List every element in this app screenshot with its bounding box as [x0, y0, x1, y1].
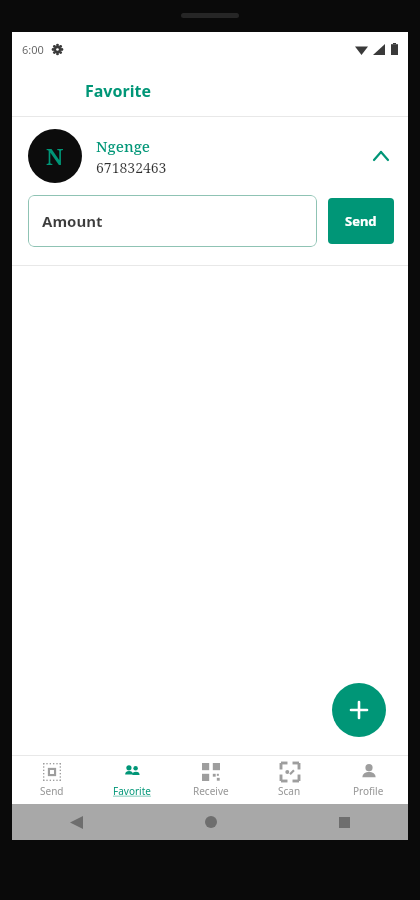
button[interactable]: Scan	[250, 756, 329, 804]
staticText: Send	[345, 212, 377, 230]
staticText: 671832463	[96, 158, 167, 177]
other: Back	[70, 816, 83, 829]
staticText: N	[46, 141, 64, 171]
staticText: Ngenge	[96, 136, 150, 156]
staticText: Favorite	[85, 80, 151, 102]
button[interactable]: Amount	[28, 195, 317, 247]
button[interactable]: Add	[332, 683, 386, 737]
staticText: Send	[40, 784, 64, 798]
button[interactable]: Send	[12, 756, 92, 804]
button[interactable]: Receive	[171, 756, 250, 804]
button[interactable]: N	[12, 117, 408, 183]
staticText: Profile	[353, 784, 384, 798]
button[interactable]: Send	[328, 198, 394, 244]
staticText: Scan	[278, 784, 301, 798]
button[interactable]: Collapse	[364, 139, 398, 173]
other: Home	[205, 816, 217, 828]
staticText: Favorite	[113, 784, 151, 798]
staticText: Amount	[42, 211, 103, 231]
button[interactable]: Profile	[329, 756, 408, 804]
button[interactable]: Favorite	[92, 756, 171, 804]
staticText: 6:00	[22, 42, 44, 57]
staticText: Receive	[193, 784, 229, 798]
